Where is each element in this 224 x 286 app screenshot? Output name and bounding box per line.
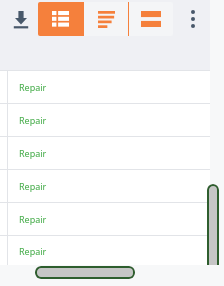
staticText: Repair [19,114,47,126]
staticText: Repair [19,213,47,225]
staticText: Repair [19,180,47,192]
button[interactable]: Download [4,2,38,36]
button[interactable]: List view [84,2,128,36]
staticText: Repair [19,81,47,93]
button[interactable]: Repair [0,104,224,136]
button[interactable]: Vertical scrollbar [207,184,219,276]
button[interactable]: Grid view [38,2,83,36]
button[interactable]: Split view [129,2,173,36]
button[interactable]: Repair [0,71,224,103]
button[interactable]: Repair [0,203,224,235]
staticText: Repair [19,245,47,257]
button[interactable]: Repair [0,170,224,202]
button[interactable]: Repair [0,137,224,169]
staticText: Repair [19,147,47,159]
button[interactable]: Horizontal scrollbar [35,266,135,279]
button[interactable]: More options [180,2,206,36]
button[interactable]: Repair [0,236,224,265]
